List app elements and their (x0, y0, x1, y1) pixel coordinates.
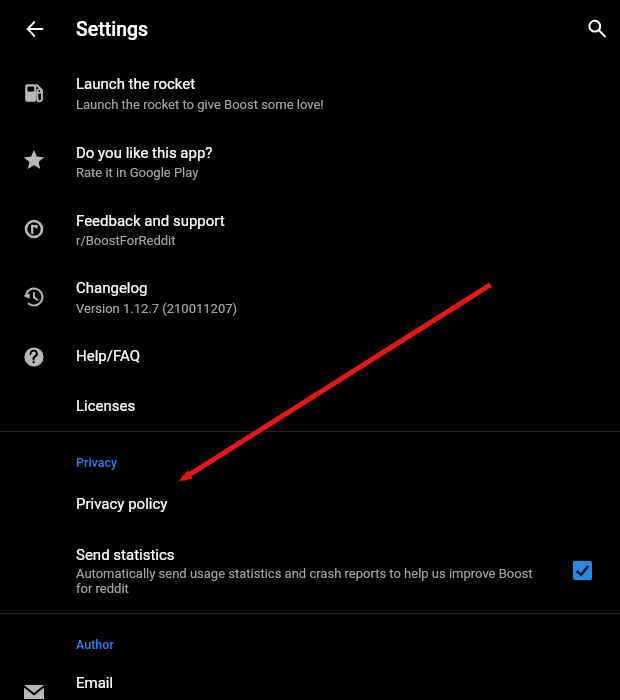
staticText: Automatically send usage statistics and … (76, 566, 538, 596)
staticText: r/BoostForReddit (76, 233, 176, 248)
staticText: Feedback and support (76, 212, 225, 230)
button[interactable]: Licenses (0, 382, 620, 432)
staticText: Licenses (76, 397, 136, 415)
button[interactable]: Privacy policy (0, 480, 620, 525)
staticText: Help/FAQ (76, 347, 140, 365)
button[interactable]: Email (0, 660, 620, 700)
button[interactable]: Help/FAQ (0, 332, 620, 382)
button[interactable]: Feedback and support (0, 196, 620, 264)
staticText: Changelog (76, 279, 148, 297)
button[interactable]: Do you like this app? (0, 128, 620, 196)
button[interactable]: Send statistics, enabled (554, 546, 610, 594)
staticText: Privacy policy (76, 495, 168, 513)
staticText: Privacy (76, 455, 118, 470)
staticText: Rate it in Google Play (76, 165, 199, 180)
button[interactable]: Changelog (0, 264, 620, 332)
staticText: Do you like this app? (76, 144, 213, 162)
staticText: Email (76, 674, 114, 692)
staticText: Launch the rocket to give Boost some lov… (76, 97, 324, 112)
button[interactable]: Back (13, 7, 57, 51)
staticText: Launch the rocket (76, 75, 196, 93)
staticText: Author (76, 637, 114, 652)
button[interactable]: Launch the rocket (0, 60, 620, 128)
staticText: Settings (76, 18, 149, 41)
staticText: Version 1.12.7 (210011207) (76, 301, 238, 316)
button[interactable]: Search (566, 6, 614, 54)
staticText: Send statistics (76, 546, 175, 564)
button[interactable]: Send statistics (0, 532, 620, 610)
